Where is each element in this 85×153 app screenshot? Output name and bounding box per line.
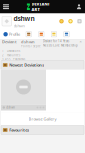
- staticText: 2 Favourites: [2, 53, 20, 57]
- staticText: Favourites: [9, 127, 29, 133]
- staticText: Needs Core Membership: [43, 44, 78, 47]
- staticText: 3,455 Pageviews: [2, 57, 25, 61]
- button[interactable]: Prints: [35, 29, 48, 39]
- button[interactable]: Journal: [60, 29, 73, 39]
- staticText: Deviant: [2, 39, 17, 44]
- button[interactable]: Favourites: [1, 125, 84, 134]
- button[interactable]: Avatar: [2, 16, 11, 26]
- staticText: dshwn: [13, 23, 24, 28]
- button[interactable]: Gallery: [22, 29, 35, 39]
- button[interactable]: Menu: [0, 0, 12, 13]
- staticText: Browse Gallery: [28, 116, 56, 122]
- button[interactable]: Llama badge: [58, 17, 65, 26]
- button[interactable]: More: [76, 17, 83, 26]
- staticText: dshwn: [13, 14, 34, 23]
- staticText: ART: [31, 7, 39, 12]
- staticText: Newest Deviations: [9, 62, 44, 68]
- button[interactable]: Profile: [1, 29, 22, 39]
- button[interactable]: Newest Deviations: [1, 60, 84, 69]
- button[interactable]: Favourites: [48, 29, 60, 39]
- staticText: dshwn: [6, 106, 15, 109]
- staticText: Deviant for 14 Years: [43, 40, 69, 43]
- button[interactable]: Deviation thumbnail: [1, 69, 46, 110]
- staticText: ×: [79, 39, 81, 44]
- button[interactable]: Close ad: [78, 39, 83, 44]
- staticText: dshwn: [21, 39, 35, 44]
- staticText: 1 Deviations: [2, 49, 20, 53]
- button[interactable]: Award: [67, 17, 74, 26]
- staticText: Points / Septe: [21, 44, 41, 48]
- button[interactable]: DEVIANT: [25, 0, 49, 13]
- button[interactable]: Account: [73, 0, 85, 13]
- staticText: Profile: [9, 32, 20, 37]
- button[interactable]: Browse Gallery: [1, 112, 84, 125]
- staticText: DEVIANT: [31, 1, 49, 7]
